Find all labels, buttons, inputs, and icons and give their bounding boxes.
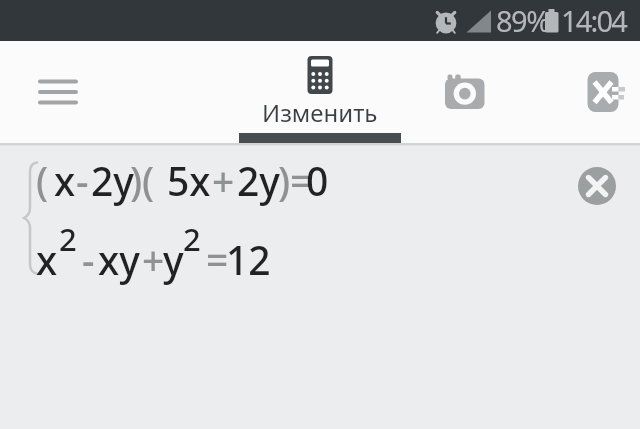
staticText: 2y (91, 154, 134, 207)
staticText: ( (142, 154, 155, 207)
staticText: ) (130, 154, 143, 207)
staticText: + (212, 154, 235, 207)
button[interactable]: Изменить (239, 41, 401, 143)
staticText: 89% (496, 1, 549, 40)
staticText: Изменить (262, 96, 378, 129)
staticText: = (206, 233, 229, 286)
button[interactable] (583, 62, 640, 118)
staticText: x (36, 233, 58, 286)
staticText: ( (36, 154, 49, 207)
staticText: 2y (237, 154, 280, 207)
staticText: 0 (306, 154, 329, 207)
staticText: x (54, 154, 76, 207)
staticText: 2 (183, 218, 201, 260)
staticText: - (76, 154, 89, 207)
staticText: 5x (167, 154, 211, 207)
staticText: + (142, 233, 165, 286)
button[interactable] (578, 167, 616, 205)
staticText: xy (98, 233, 140, 286)
staticText: 14:04 (561, 1, 627, 40)
button[interactable] (437, 62, 493, 118)
staticText: ) (278, 154, 291, 207)
staticText: - (82, 233, 95, 286)
staticText: 12 (226, 233, 271, 286)
staticText: 2 (59, 218, 77, 260)
staticText: y (163, 233, 184, 286)
staticText: = (290, 154, 313, 207)
button[interactable] (28, 62, 88, 122)
